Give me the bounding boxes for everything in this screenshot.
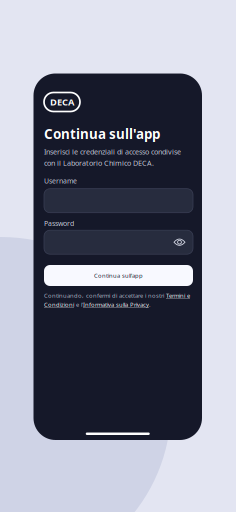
staticText: Continuando, confermi di accettare i nos… — [44, 292, 166, 299]
staticText: e l' — [74, 300, 83, 308]
button[interactable]: Continua sull'app — [44, 265, 193, 286]
staticText: Continua sull'app — [94, 272, 143, 279]
staticText: Continua sull'app — [44, 125, 160, 143]
staticText: Condizioni — [44, 300, 74, 308]
staticText: Password — [44, 219, 74, 228]
staticText: Inserisci le credenziali di accesso cond… — [44, 147, 181, 157]
staticText: . — [149, 300, 151, 308]
staticText: Informativa sulla Privacy — [83, 300, 149, 308]
staticText: Username — [44, 176, 77, 186]
staticText: DECA — [50, 96, 74, 108]
staticText: Termini e — [166, 292, 190, 299]
staticText: con il Laboratorio Chimico DECA. — [44, 158, 154, 168]
